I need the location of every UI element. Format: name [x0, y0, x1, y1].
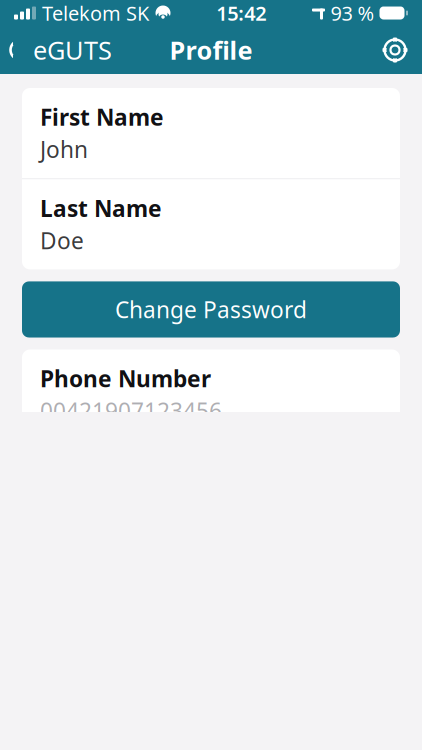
staticText: 15:42: [216, 0, 266, 26]
staticText: First Name: [40, 102, 164, 132]
staticText: Phone Number: [40, 363, 211, 394]
staticText: eGUTS: [33, 33, 112, 67]
button[interactable]: Settings: [368, 28, 422, 72]
staticText: 93 %: [330, 0, 374, 26]
button[interactable]: eGUTS: [0, 24, 126, 76]
staticText: John: [40, 134, 88, 164]
button[interactable]: Change Password: [22, 281, 400, 337]
staticText: Profile: [169, 33, 252, 67]
staticText: Change Password: [115, 294, 307, 324]
staticText: 00421907123456: [40, 396, 222, 426]
staticText: Last Name: [40, 193, 162, 223]
staticText: Telekom SK: [42, 0, 149, 26]
staticText: Doe: [40, 225, 84, 255]
